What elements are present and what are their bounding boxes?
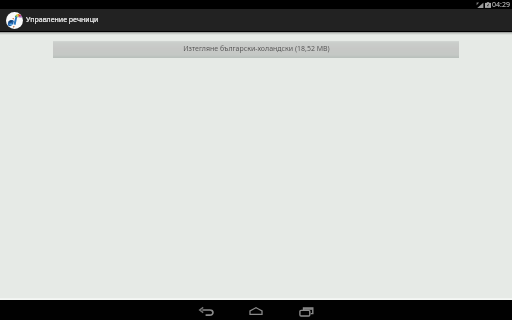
button[interactable]: Home (231, 300, 281, 320)
button[interactable]: Управление речници (0, 9, 105, 31)
button[interactable]: Изтегляне български-холандски (18,52 MB) (53, 41, 459, 58)
button[interactable]: Recents (281, 300, 331, 320)
staticText: Изтегляне български-холандски (18,52 MB) (183, 44, 330, 54)
staticText: 04:29 (492, 0, 510, 9)
staticText: Управление речници (26, 15, 99, 25)
button[interactable]: Back (181, 300, 231, 320)
